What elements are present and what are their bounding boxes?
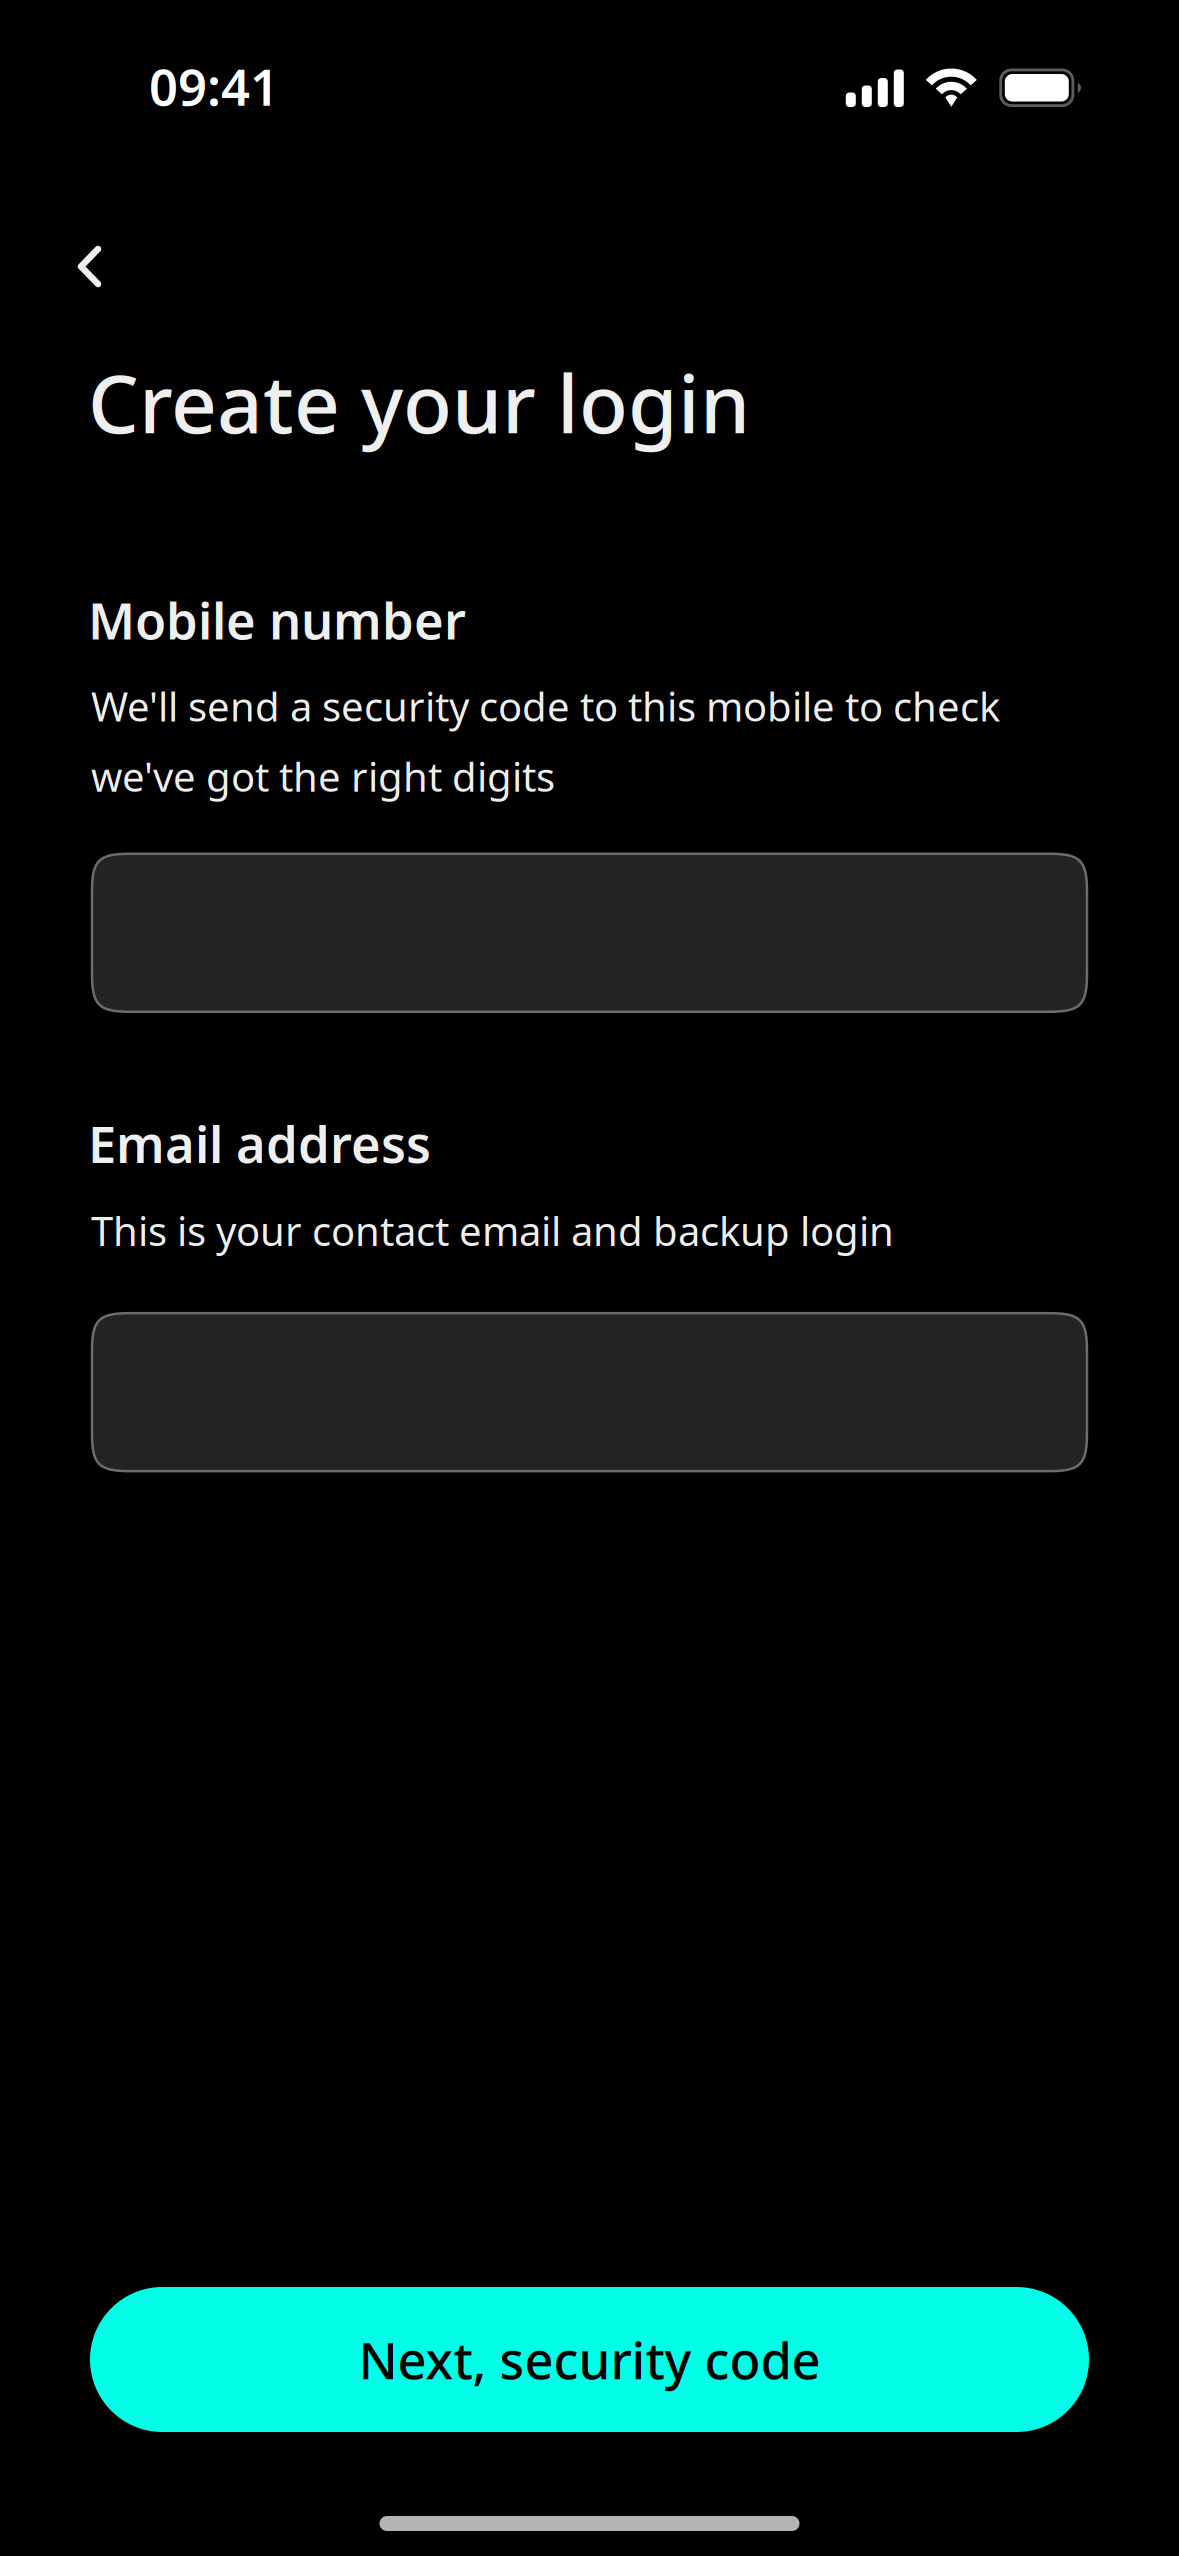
staticText: We'll send a security code to this mobil… [91,679,1000,803]
staticText: 09:41 [149,52,279,120]
button[interactable]: Next, security code [90,2287,1089,2432]
staticText: Email address [88,1110,431,1177]
staticText: Mobile number [88,586,466,653]
staticText: Create your login [88,349,750,455]
staticText: Next, security code [358,2326,820,2393]
staticText: This is your contact email and backup lo… [91,1204,894,1257]
button[interactable]: Back [0,172,210,324]
